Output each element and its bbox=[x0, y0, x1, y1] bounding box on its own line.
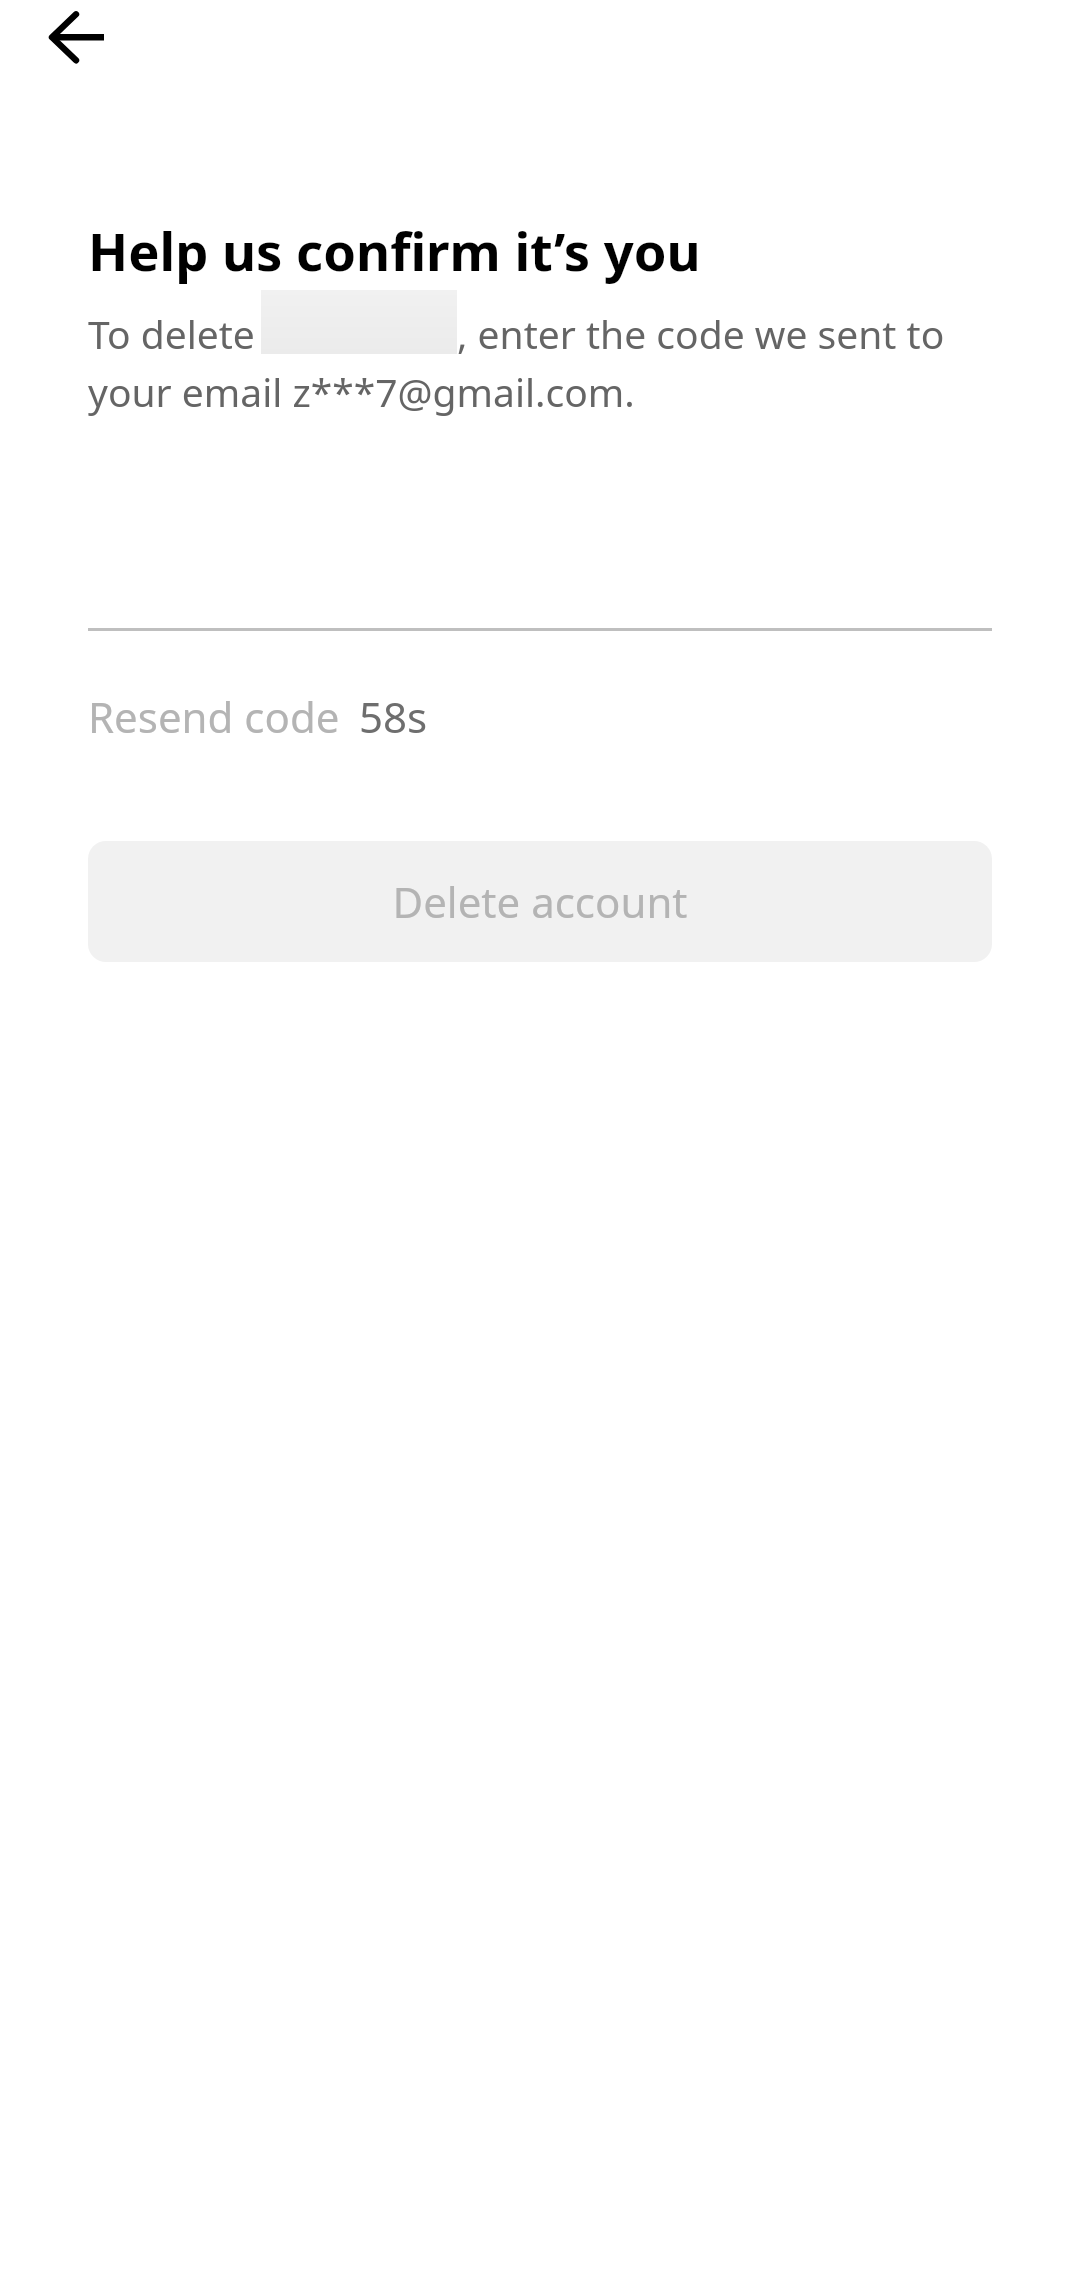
staticText: 58s bbox=[359, 688, 428, 745]
button[interactable]: Back bbox=[0, 0, 152, 152]
staticText: , enter the code we sent to bbox=[457, 307, 945, 360]
staticText: your email z***7@gmail.com. bbox=[88, 365, 635, 418]
staticText: To delete bbox=[88, 307, 265, 360]
button[interactable]: Delete account bbox=[88, 841, 992, 962]
staticText: Resend code bbox=[88, 688, 340, 745]
staticText: Help us confirm it’s you bbox=[88, 215, 701, 287]
staticText: Delete account bbox=[392, 873, 688, 930]
button[interactable]: Resend code bbox=[88, 688, 428, 745]
